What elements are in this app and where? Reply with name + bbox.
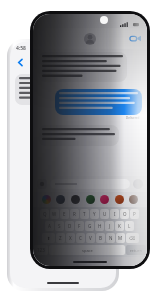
button[interactable]: App [56,195,65,204]
button[interactable]: F [75,221,84,231]
button[interactable] [42,128,115,143]
button[interactable]: I [110,209,119,219]
staticText: V [89,235,92,241]
button[interactable]: N [106,233,115,243]
staticText: L [128,223,131,229]
button[interactable] [42,55,123,79]
button[interactable]: M [116,233,125,243]
staticText: A [48,223,51,229]
staticText: E [63,211,66,217]
staticText: S [58,223,61,229]
staticText: Z [59,235,62,241]
button[interactable] [50,179,130,189]
button[interactable]: L [125,221,134,231]
staticText: 4:58 [16,45,26,52]
staticText: ⌫ [129,236,136,241]
button[interactable]: ⌫ [126,233,139,243]
staticText: B [99,235,102,241]
button[interactable]: W [50,209,59,219]
staticText: T [83,211,86,217]
staticText: P [133,211,136,217]
staticText: R [73,211,76,217]
staticText: K [118,223,121,229]
button[interactable]: ⬆ [42,233,55,243]
button[interactable]: App [71,195,80,204]
staticText: D [68,223,72,229]
button[interactable]: App [86,195,95,204]
button[interactable]: App [129,195,138,204]
button[interactable]: T [80,209,89,219]
staticText: I [114,211,116,217]
staticText: return [130,248,142,253]
button[interactable]: FaceTime [130,33,141,44]
button[interactable]: App [100,195,109,204]
button[interactable]: O [120,209,129,219]
staticText: U [103,211,107,217]
button[interactable]: Y [90,209,99,219]
button[interactable]: space [49,245,125,255]
staticText: G [88,223,92,229]
button[interactable]: C [76,233,85,243]
staticText: ⬆ [47,236,51,241]
button[interactable]: A [45,221,54,231]
button[interactable]: P [130,209,139,219]
button[interactable]: B [96,233,105,243]
button[interactable]: Z [56,233,65,243]
staticText: C [79,235,82,241]
button[interactable]: S [55,221,64,231]
button[interactable]: R [70,209,79,219]
button[interactable]: G [85,221,94,231]
button[interactable]: Q [40,209,49,219]
button[interactable]: K [115,221,124,231]
staticText: H [98,223,102,229]
button[interactable]: 123 [34,245,48,255]
button[interactable]: Camera [37,179,47,189]
button[interactable]: D [65,221,74,231]
button[interactable]: App [115,195,124,204]
staticText: W [52,211,57,217]
button[interactable]: J [105,221,114,231]
button[interactable]: Back [15,57,26,68]
button[interactable]: E [60,209,69,219]
staticText: Q [43,211,47,217]
staticText: M [118,235,123,241]
staticText: 123 [37,247,45,253]
staticText: Y [93,211,96,217]
staticText: X [69,235,72,241]
button[interactable]: return [126,245,146,255]
button[interactable]: App [42,195,51,204]
staticText: Delivered [126,116,140,120]
button[interactable]: V [86,233,95,243]
button[interactable] [59,92,138,112]
button[interactable]: Send [133,179,143,189]
button[interactable]: U [100,209,109,219]
staticText: O [123,211,127,217]
staticText: space [82,248,93,253]
button[interactable]: X [66,233,75,243]
button[interactable]: H [95,221,104,231]
staticText: J [109,223,111,229]
staticText: F [78,223,81,229]
staticText: N [109,235,113,241]
